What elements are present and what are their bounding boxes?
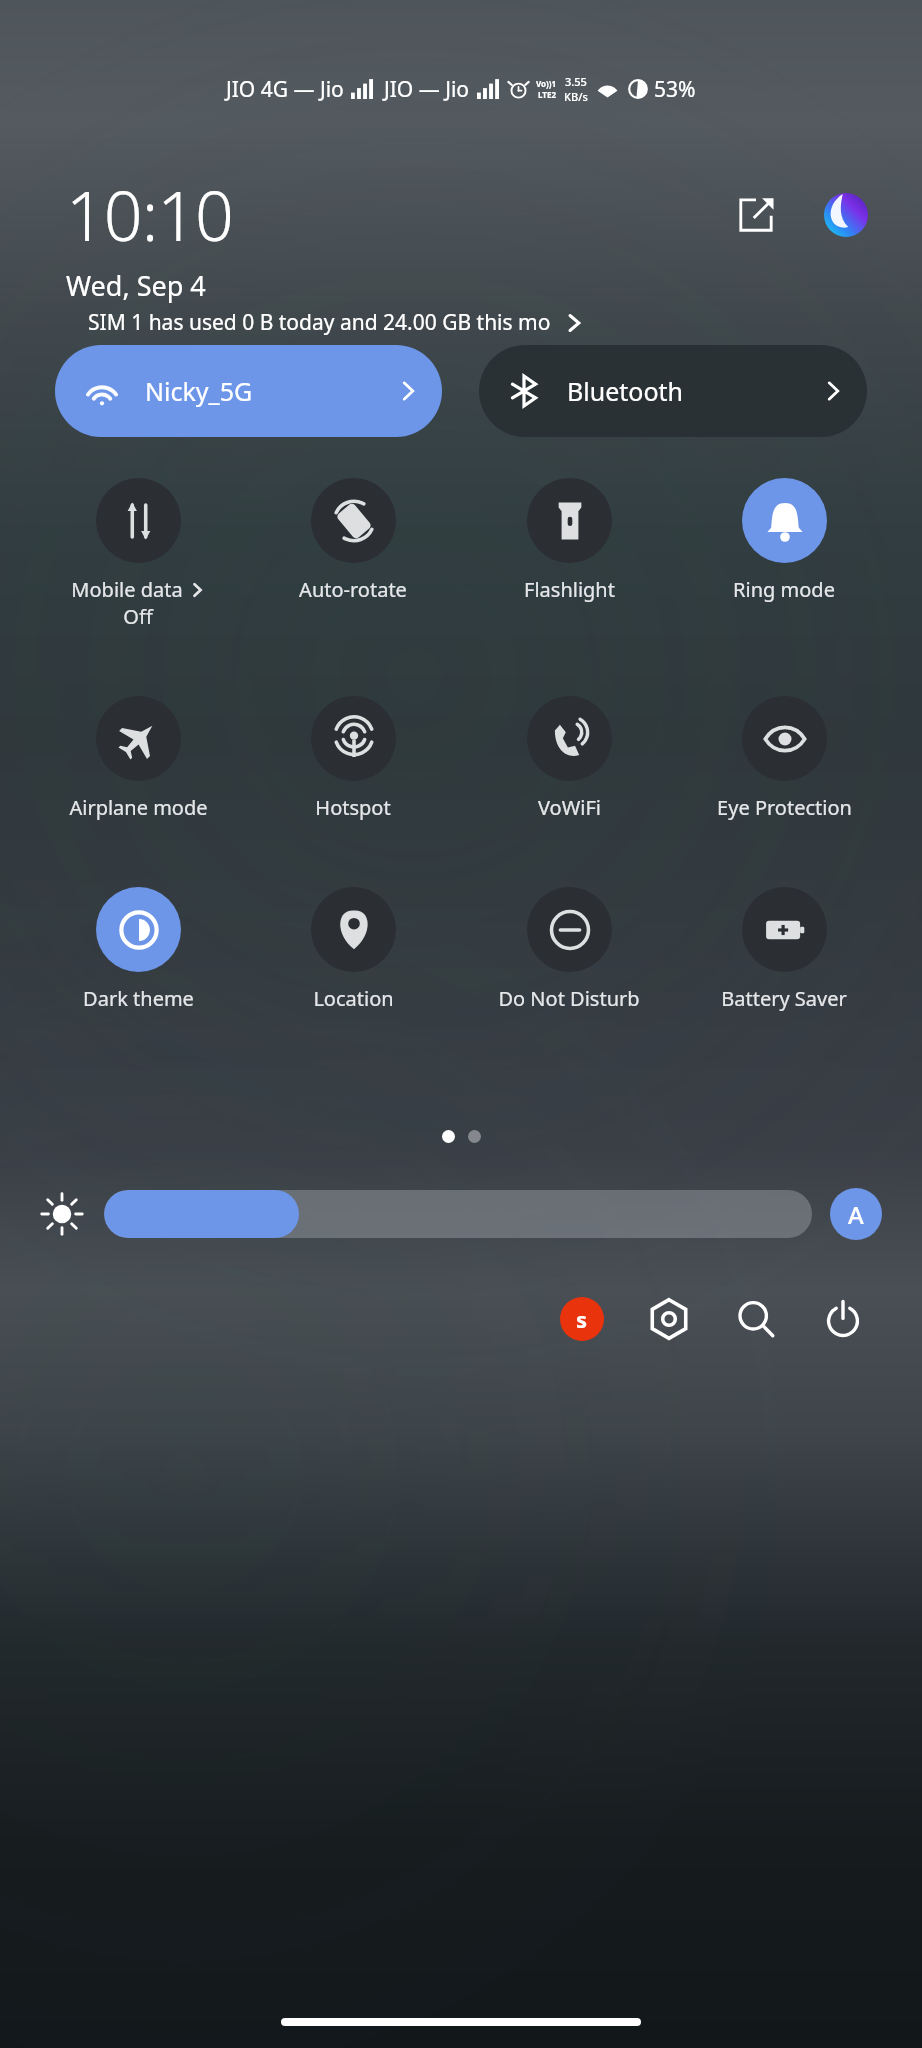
staticText: VoWiFi [538, 794, 601, 821]
staticText: Flashlight [524, 576, 615, 603]
staticText: Vo))1 [536, 78, 557, 89]
button[interactable]: Auto-rotate [258, 478, 448, 603]
staticText: JIO — Jio [384, 75, 470, 104]
button[interactable]: Hotspot [258, 696, 448, 821]
staticText: KB/s [564, 89, 588, 104]
staticText: Airplane mode [69, 794, 208, 821]
staticText: Bluetooth [567, 374, 684, 408]
button[interactable] [104, 1190, 812, 1238]
button[interactable]: Settings [638, 1288, 700, 1350]
button[interactable]: Airplane mode [43, 696, 233, 821]
staticText: Off [123, 603, 153, 630]
staticText: JIO 4G — Jio [226, 75, 344, 104]
staticText: Battery Saver [721, 985, 847, 1012]
button[interactable]: Shortcut S [551, 1288, 613, 1350]
staticText: LTE2 [538, 89, 556, 100]
button[interactable]: Search [725, 1288, 787, 1350]
staticText: Mobile data [71, 576, 183, 603]
staticText: SIM 1 has used 0 B today and 24.00 GB th… [88, 308, 551, 337]
button[interactable]: Dark theme [43, 887, 233, 1012]
button[interactable]: Flashlight [474, 478, 664, 603]
button[interactable]: Mobile data [43, 478, 233, 630]
staticText: 3.55 [565, 74, 587, 89]
staticText: Ring mode [733, 576, 835, 603]
staticText: Location [313, 985, 394, 1012]
button[interactable]: Eye Protection [689, 696, 879, 821]
staticText: 10:10 [66, 168, 233, 261]
button[interactable]: User profile [822, 191, 870, 239]
staticText: Nicky_5G [145, 374, 253, 408]
button[interactable]: VoWiFi [474, 696, 664, 821]
button[interactable]: Do Not Disturb [474, 887, 664, 1012]
staticText: Eye Protection [717, 794, 852, 821]
staticText: Hotspot [315, 794, 391, 821]
button[interactable]: Battery Saver [689, 887, 879, 1012]
staticText: Auto-rotate [299, 576, 407, 603]
staticText: A [848, 1198, 864, 1231]
button[interactable]: A [830, 1188, 882, 1240]
staticText: s [576, 1304, 588, 1334]
button[interactable]: SIM 1 has used 0 B today and 24.00 GB th… [88, 308, 874, 337]
button[interactable]: Power [812, 1288, 874, 1350]
staticText: Dark theme [83, 985, 194, 1012]
button[interactable]: Location [258, 887, 448, 1012]
staticText: Do Not Disturb [498, 985, 640, 1012]
button[interactable]: Ring mode [689, 478, 879, 603]
button[interactable]: Bluetooth [479, 345, 867, 437]
button[interactable]: Edit [732, 191, 780, 239]
button[interactable]: Nicky_5G [55, 345, 442, 437]
staticText: Wed, Sep 4 [66, 267, 206, 304]
staticText: 53% [654, 75, 696, 104]
